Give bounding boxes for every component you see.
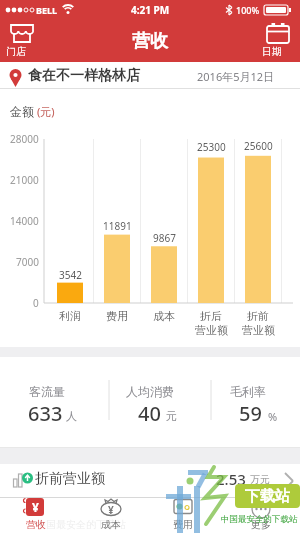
- staticText: 营收: [132, 30, 168, 53]
- staticText: 金额: [10, 104, 34, 119]
- staticText: 客流量: [29, 384, 65, 399]
- staticText: 折前营业额: [35, 470, 105, 488]
- staticText: 3542: [59, 268, 82, 282]
- staticText: 食在不一样格林店: [28, 67, 140, 85]
- staticText: 中国最安全的下载站: [221, 514, 298, 525]
- staticText: 7000: [16, 255, 39, 269]
- staticText: BELL: [36, 4, 58, 16]
- staticText: 毛利率: [230, 384, 266, 399]
- staticText: 折前: [247, 309, 269, 323]
- button[interactable]: 食在不一样格林店: [0, 62, 300, 89]
- staticText: (元): [37, 104, 55, 119]
- staticText: 营业额: [242, 323, 275, 337]
- button[interactable]: 门店: [6, 21, 38, 61]
- staticText: 营业额: [195, 323, 228, 337]
- staticText: 9867: [153, 231, 176, 245]
- staticText: 21000: [10, 173, 39, 187]
- staticText: 费用: [106, 309, 128, 323]
- staticText: 日期: [262, 45, 282, 58]
- staticText: 2016年5月12日: [197, 69, 275, 84]
- staticText: 中国最安全的下载站: [36, 518, 126, 531]
- staticText: 万元: [250, 473, 270, 486]
- staticText: 2.53: [216, 469, 246, 489]
- staticText: 成本: [153, 309, 175, 323]
- staticText: 门店: [6, 45, 26, 58]
- staticText: 下载站: [245, 487, 290, 506]
- staticText: 折后: [200, 309, 222, 323]
- staticText: 40: [138, 400, 161, 427]
- staticText: 人均消费: [126, 384, 174, 399]
- staticText: 0: [33, 296, 39, 310]
- button[interactable]: 更多: [241, 497, 281, 533]
- staticText: 成本: [101, 518, 121, 531]
- staticText: 元: [166, 409, 177, 423]
- staticText: 更多: [251, 518, 271, 531]
- staticText: 利润: [59, 309, 81, 323]
- staticText: 59: [239, 400, 262, 427]
- staticText: 11891: [103, 219, 132, 233]
- staticText: 营收: [26, 518, 46, 531]
- staticText: 费用: [173, 518, 193, 531]
- staticText: 633: [28, 400, 63, 427]
- staticText: ¥: [32, 499, 39, 515]
- staticText: ¥: [108, 503, 114, 517]
- staticText: 14000: [10, 214, 39, 228]
- button[interactable]: ¥: [91, 497, 131, 533]
- staticText: %: [268, 409, 278, 424]
- button[interactable]: 日期: [262, 21, 294, 61]
- staticText: 25600: [244, 139, 273, 153]
- button[interactable]: 折前营业额: [0, 464, 300, 497]
- button[interactable]: 费用: [163, 497, 203, 533]
- staticText: 28000: [10, 132, 39, 146]
- staticText: 人: [66, 409, 77, 423]
- staticText: 100%: [236, 4, 260, 16]
- button[interactable]: ¥: [16, 497, 56, 533]
- staticText: 25300: [197, 140, 226, 154]
- staticText: 4:21 PM: [131, 3, 170, 17]
